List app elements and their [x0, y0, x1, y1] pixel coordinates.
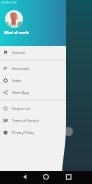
button[interactable]: Interventii [0, 62, 66, 74]
button[interactable]: Setari [0, 74, 66, 86]
button[interactable]: Despre noi [0, 102, 66, 114]
button[interactable]: Favorite [0, 46, 66, 58]
staticText: Setari [12, 78, 22, 83]
staticText: Blind of world [4, 30, 29, 35]
button[interactable]: Blind of world [0, 0, 66, 46]
button[interactable]: Recent apps [65, 171, 92, 184]
staticText: Privacy Policy [12, 130, 35, 135]
button[interactable]: Home [43, 171, 92, 184]
button[interactable]: Share App [0, 86, 66, 98]
staticText: Despre noi [12, 106, 30, 111]
button[interactable]: Back [21, 171, 92, 184]
staticText: Share App [12, 90, 29, 95]
button[interactable]: Add [64, 127, 73, 136]
staticText: Favorite [12, 50, 26, 55]
button[interactable]: Privacy Policy [0, 126, 66, 138]
button[interactable]: Terms of Service [0, 114, 66, 126]
staticText: Terms of Service [12, 118, 39, 123]
button[interactable] [0, 0, 92, 184]
staticText: Interventii [12, 66, 30, 71]
